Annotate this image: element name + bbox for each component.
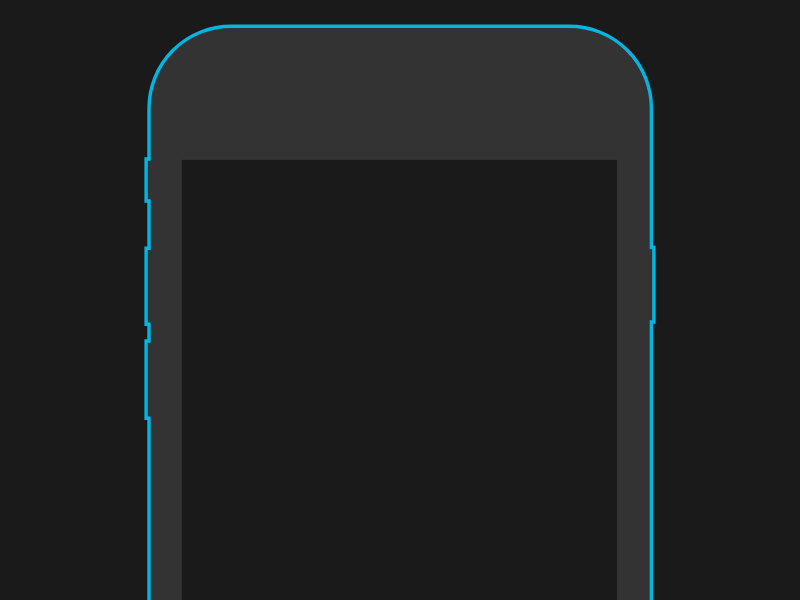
button[interactable]: Volume up — [146, 248, 157, 324]
button[interactable]: Volume down — [146, 341, 157, 418]
button[interactable]: Mute switch — [146, 159, 157, 201]
button[interactable]: Power button — [643, 248, 654, 323]
